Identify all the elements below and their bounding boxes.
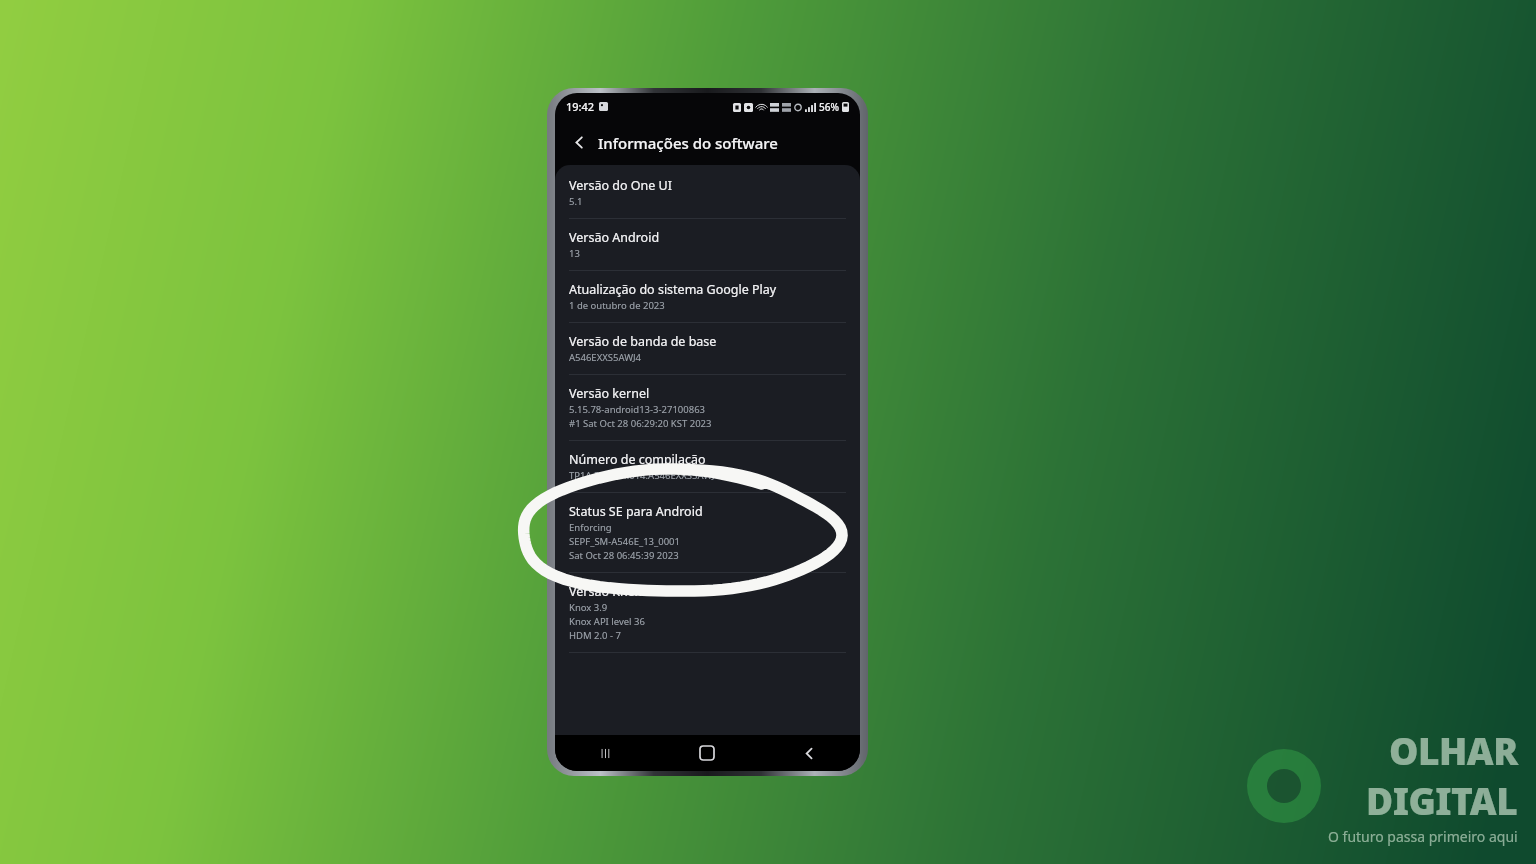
staticText: Status SE para Android [569, 503, 703, 520]
staticText: 5.1 [569, 195, 583, 208]
staticText: #1 Sat Oct 28 06:29:20 KST 2023 [569, 417, 712, 430]
staticText: TP1A.220624.014.A546EXXS5AWJ4 [569, 469, 721, 482]
staticText: 19:42 [566, 99, 595, 114]
staticText: Informações do software [598, 133, 778, 153]
button[interactable]: Voltar [566, 129, 593, 156]
button[interactable]: Versão kernel [555, 375, 860, 440]
staticText: OLHAR [1389, 725, 1518, 775]
staticText: Enforcing [569, 521, 612, 534]
staticText: HDM 2.0 - 7 [569, 629, 621, 642]
staticText: Sat Oct 28 06:45:39 2023 [569, 549, 679, 562]
staticText: Versão do One UI [569, 177, 672, 194]
button[interactable]: Versão do One UI [555, 167, 860, 218]
button[interactable]: Versão de banda de base [555, 323, 860, 374]
staticText: Knox API level 36 [569, 615, 645, 628]
staticText: Versão kernel [569, 385, 650, 402]
staticText: 1 de outubro de 2023 [569, 299, 665, 312]
staticText: Knox 3.9 [569, 601, 608, 614]
staticText: Versão Knox [569, 583, 642, 600]
staticText: Versão Android [569, 229, 660, 246]
staticText: Atualização do sistema Google Play [569, 281, 777, 298]
button[interactable]: Status SE para Android [555, 493, 860, 572]
button[interactable]: Versão Knox [555, 573, 860, 652]
staticText: Número de compilação [569, 451, 706, 468]
button[interactable]: Versão Android [555, 219, 860, 270]
staticText: O futuro passa primeiro aqui [1328, 827, 1518, 846]
button[interactable]: Recentes [555, 735, 656, 771]
staticText: 56% [819, 100, 839, 114]
button[interactable]: Atualização do sistema Google Play [555, 271, 860, 322]
staticText: 13 [569, 247, 580, 260]
staticText: A546EXXS5AWJ4 [569, 351, 641, 364]
staticText: Versão de banda de base [569, 333, 717, 350]
button[interactable]: Voltar [758, 735, 860, 771]
button[interactable]: Início [656, 735, 758, 771]
staticText: 5.15.78-android13-3-27100863 [569, 403, 706, 416]
button[interactable]: Número de compilação [555, 441, 860, 492]
staticText: DIGITAL [1366, 775, 1518, 825]
staticText: SEPF_SM-A546E_13_0001 [569, 535, 680, 548]
